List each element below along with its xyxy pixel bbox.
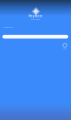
staticText: SUGGESTED bbox=[4, 26, 13, 28]
staticText: How can I help? bbox=[30, 18, 40, 20]
staticText: Hey there bbox=[28, 14, 42, 18]
button[interactable]: Guide bbox=[60, 43, 70, 51]
button[interactable]: Ask anything bbox=[2, 35, 68, 39]
staticText: Guide bbox=[63, 48, 67, 50]
